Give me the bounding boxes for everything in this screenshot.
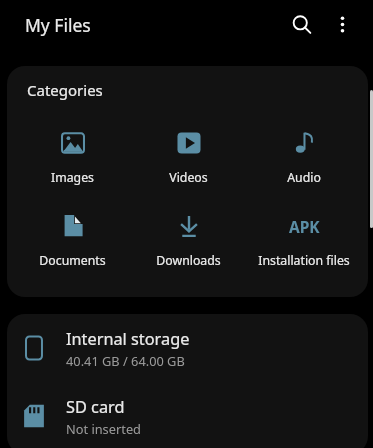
staticText: Internal storage <box>66 328 190 350</box>
staticText: Categories <box>27 80 103 100</box>
staticText: SD card <box>66 396 125 418</box>
button[interactable]: Images <box>22 131 122 193</box>
button[interactable]: APK <box>254 214 354 276</box>
button[interactable]: Downloads <box>138 214 238 276</box>
staticText: Documents <box>39 252 106 269</box>
staticText: Installation files <box>258 252 350 269</box>
staticText: 40.41 GB / 64.00 GB <box>66 352 185 369</box>
button[interactable]: My Files <box>25 13 91 37</box>
button[interactable]: Audio <box>254 131 354 193</box>
staticText: Images <box>51 169 94 186</box>
staticText: My Files <box>25 13 91 37</box>
button[interactable]: More options <box>320 2 364 46</box>
staticText: Audio <box>287 169 321 186</box>
button[interactable]: Search <box>280 3 324 47</box>
button[interactable]: SD card <box>7 382 368 448</box>
button[interactable]: Videos <box>138 131 238 193</box>
staticText: Videos <box>169 169 208 186</box>
button[interactable]: Internal storage <box>7 314 368 382</box>
staticText: APK <box>289 216 320 237</box>
staticText: Downloads <box>156 252 221 269</box>
button[interactable]: Documents <box>22 214 122 276</box>
staticText: Not inserted <box>66 420 141 437</box>
